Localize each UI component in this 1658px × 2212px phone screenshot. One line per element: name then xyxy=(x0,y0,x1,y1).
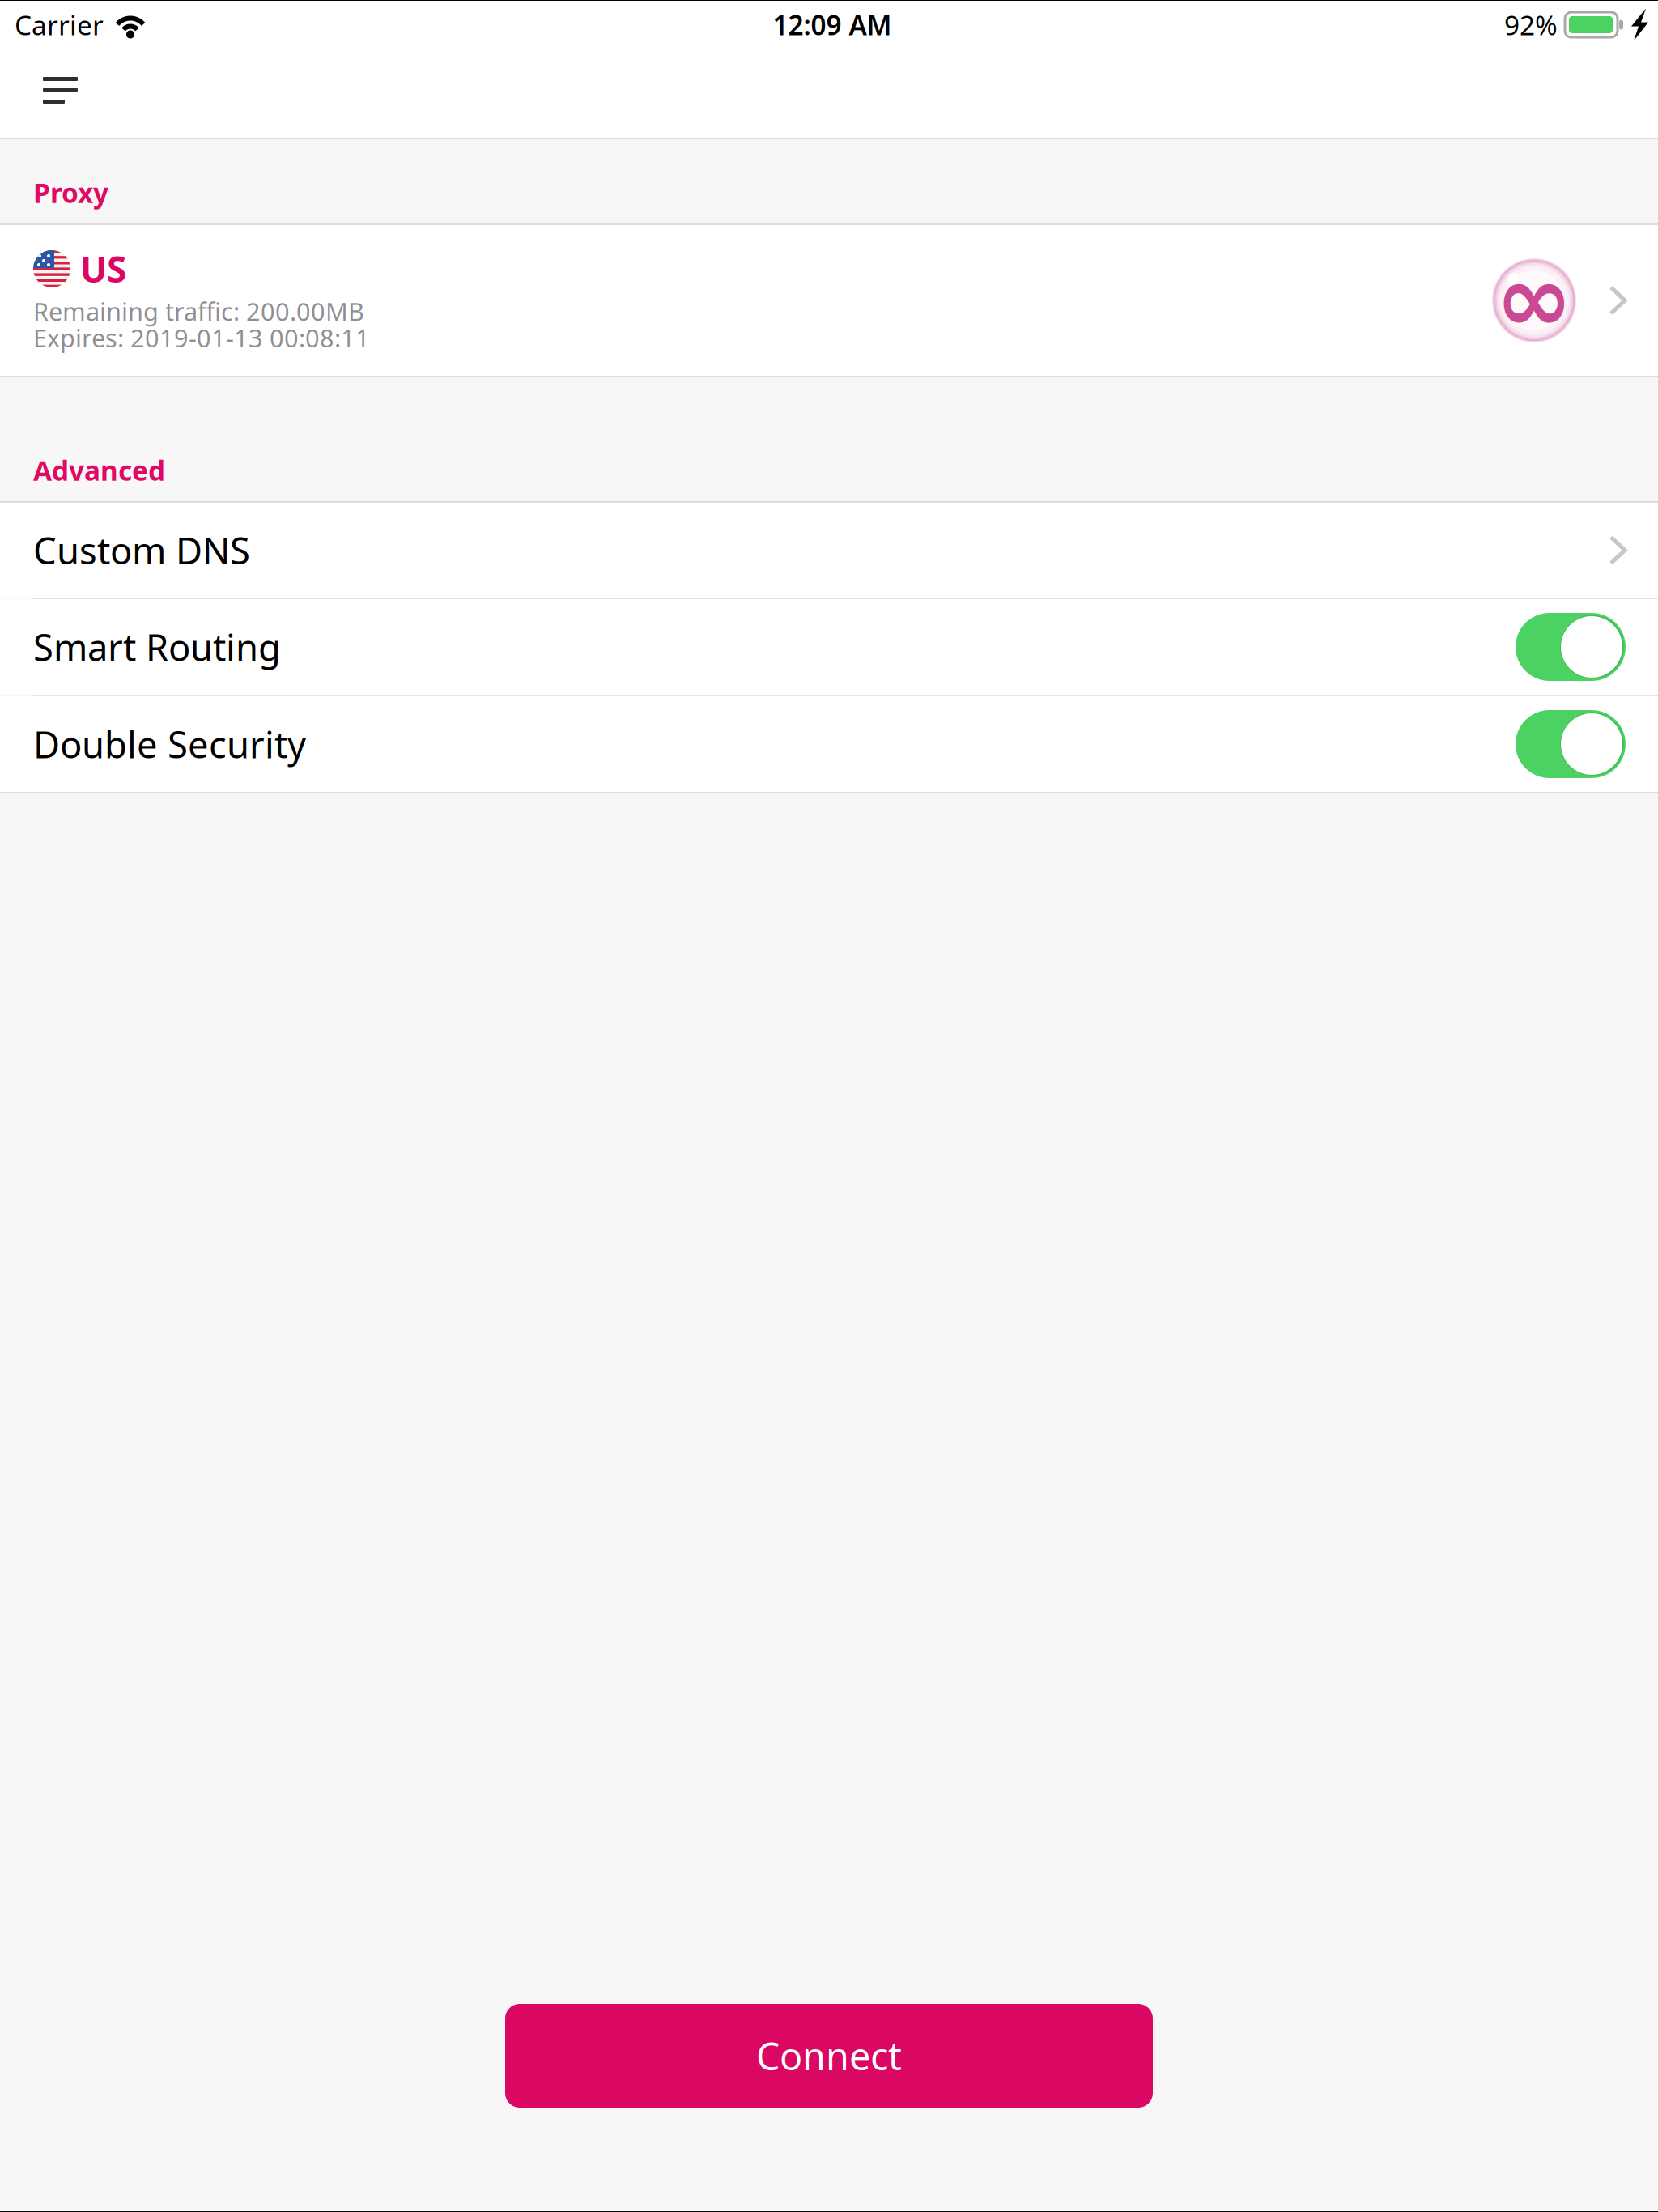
staticText: Expires: 2019-01-13 00:08:11 xyxy=(33,321,370,354)
staticText: US xyxy=(80,245,126,292)
button[interactable]: Double Security xyxy=(0,696,1658,792)
staticText: Smart Routing xyxy=(33,623,281,671)
button[interactable]: Menu xyxy=(0,49,110,138)
button[interactable]: Custom DNS xyxy=(0,503,1658,598)
staticText: Advanced xyxy=(33,452,165,488)
staticText: Remaining traffic: 200.00MB xyxy=(33,295,364,328)
staticText: Carrier xyxy=(15,7,104,43)
staticText: Connect xyxy=(756,2031,902,2081)
button[interactable]: Connect xyxy=(505,2004,1153,2108)
button[interactable]: US xyxy=(0,225,1658,376)
button[interactable]: Smart Routing xyxy=(0,599,1658,695)
staticText: Proxy xyxy=(33,175,108,211)
staticText: 92% xyxy=(1504,7,1558,43)
staticText: Double Security xyxy=(33,720,306,768)
staticText: 12:09 AM xyxy=(773,7,892,43)
staticText: ∞ xyxy=(1495,246,1573,351)
staticText: Custom DNS xyxy=(33,526,250,575)
